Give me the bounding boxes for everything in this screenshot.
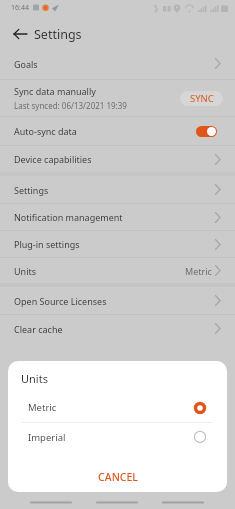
button[interactable]: Back [157, 492, 235, 509]
staticText: Settings [34, 26, 82, 43]
button[interactable]: CANCEL [8, 451, 227, 492]
button[interactable]: Back [8, 22, 32, 46]
button[interactable]: Auto-sync data [0, 117, 235, 145]
staticText: Imperial [28, 431, 66, 444]
staticText: Clear cache [14, 323, 63, 335]
staticText: Sync data manually [14, 85, 96, 97]
staticText: Auto-sync data [14, 125, 77, 137]
staticText: Goals [14, 58, 38, 70]
button[interactable]: Recents [0, 492, 79, 509]
staticText: Units [21, 371, 48, 386]
staticText: CANCEL [98, 470, 138, 484]
button[interactable]: Settings [0, 176, 235, 203]
staticText: Metric [185, 265, 212, 277]
button[interactable]: Clear cache [0, 315, 235, 342]
staticText: Device capabilities [14, 153, 92, 165]
staticText: Open Source Licenses [14, 295, 107, 307]
button[interactable]: Home [79, 492, 157, 509]
button[interactable]: SYNC [180, 91, 223, 106]
staticText: Notification management [14, 211, 123, 223]
button[interactable]: Notification management [0, 204, 235, 230]
staticText: Last synced: 06/13/2021 19:39 [14, 100, 127, 111]
button[interactable]: Open Source Licenses [0, 287, 235, 314]
button[interactable]: Device capabilities [0, 146, 235, 172]
button[interactable]: Metric [8, 393, 227, 422]
button[interactable]: Sync data manually [0, 80, 235, 116]
staticText: Units [14, 265, 37, 277]
staticText: 16:44 [11, 3, 29, 13]
staticText: Plug-in settings [14, 238, 80, 250]
staticText: Metric [28, 401, 57, 414]
staticText: Settings [14, 184, 49, 196]
button[interactable]: Units [0, 258, 235, 283]
button[interactable]: Goals [0, 48, 235, 79]
button[interactable]: Imperial [8, 423, 227, 451]
button[interactable]: Plug-in settings [0, 231, 235, 257]
staticText: SYNC [190, 92, 214, 105]
